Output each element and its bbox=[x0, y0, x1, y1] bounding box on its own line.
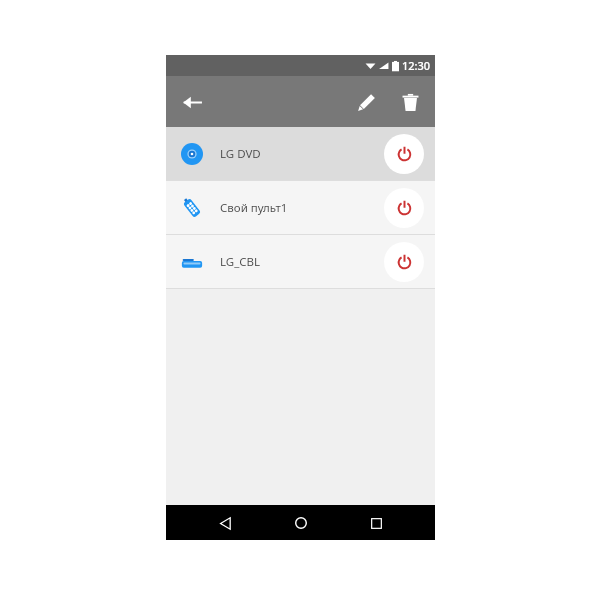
button[interactable]: Home bbox=[284, 506, 318, 540]
button[interactable]: Power bbox=[384, 188, 424, 228]
button[interactable]: Back bbox=[208, 506, 242, 540]
button[interactable]: Delete bbox=[391, 83, 429, 121]
button[interactable]: Свой пульт1 bbox=[166, 181, 435, 234]
staticText: 12:30 bbox=[402, 58, 431, 73]
staticText: Свой пульт1 bbox=[220, 200, 384, 216]
button[interactable]: LG DVD bbox=[166, 127, 435, 180]
button[interactable]: Back bbox=[172, 82, 212, 122]
button[interactable]: Power bbox=[384, 134, 424, 174]
button[interactable]: Edit bbox=[347, 83, 385, 121]
button[interactable]: Power bbox=[384, 242, 424, 282]
staticText: LG DVD bbox=[220, 146, 384, 162]
staticText: LG_CBL bbox=[220, 254, 384, 270]
button[interactable]: Recent apps bbox=[359, 506, 393, 540]
button[interactable]: LG_CBL bbox=[166, 235, 435, 288]
